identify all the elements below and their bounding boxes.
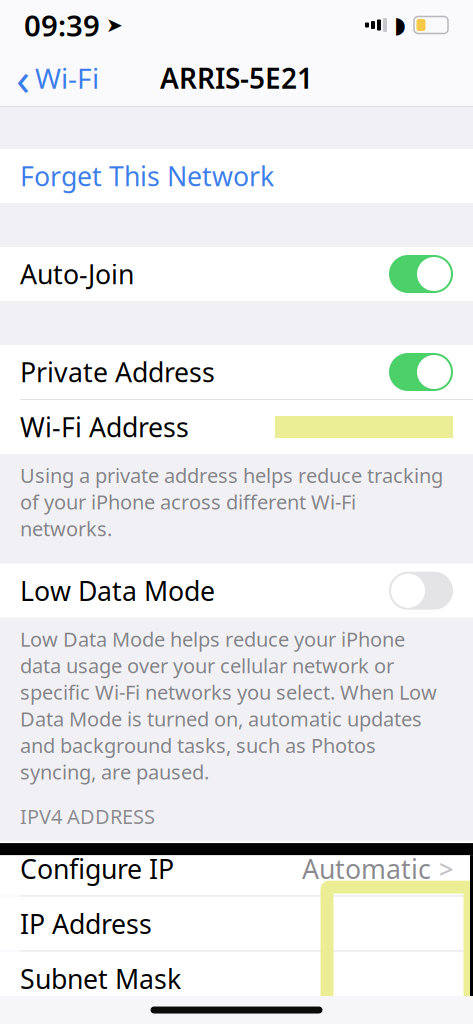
button[interactable]: Subnet Mask: [0, 952, 473, 1006]
staticText: IPV4 ADDRESS: [20, 803, 155, 830]
button[interactable]: Low Data Mode: [0, 564, 473, 618]
staticText: Forget This Network: [20, 158, 274, 194]
button[interactable]: Private Address: [0, 345, 473, 399]
staticText: Wi-Fi: [35, 59, 99, 97]
staticText: Wi-Fi Address: [20, 409, 189, 445]
staticText: Auto-Join: [20, 256, 134, 292]
button[interactable]: Forget This Network: [0, 149, 473, 203]
staticText: ➤: [106, 14, 123, 36]
staticText: Low Data Mode: [20, 573, 215, 608]
button[interactable]: Configure IP: [0, 842, 473, 896]
button[interactable]: Auto-Join: [0, 247, 473, 301]
button[interactable]: Router: [0, 1007, 473, 1024]
staticText: Automatic: [302, 851, 431, 886]
staticText: 09:39: [24, 5, 100, 44]
staticText: Low Data Mode helps reduce your iPhone d…: [20, 626, 437, 785]
staticText: ◗: [394, 12, 406, 38]
staticText: IP Address: [20, 906, 152, 941]
staticText: ‹: [16, 48, 30, 108]
staticText: Using a private address helps reduce tra…: [20, 462, 443, 542]
button[interactable]: Wi-Fi Address: [0, 400, 473, 454]
staticText: Private Address: [20, 354, 215, 390]
staticText: Subnet Mask: [20, 961, 181, 996]
button[interactable]: IP Address: [0, 897, 473, 951]
staticText: >: [439, 852, 453, 885]
staticText: Configure IP: [20, 851, 174, 886]
staticText: ARRIS-5E21: [160, 59, 313, 97]
button[interactable]: ‹: [4, 54, 111, 102]
